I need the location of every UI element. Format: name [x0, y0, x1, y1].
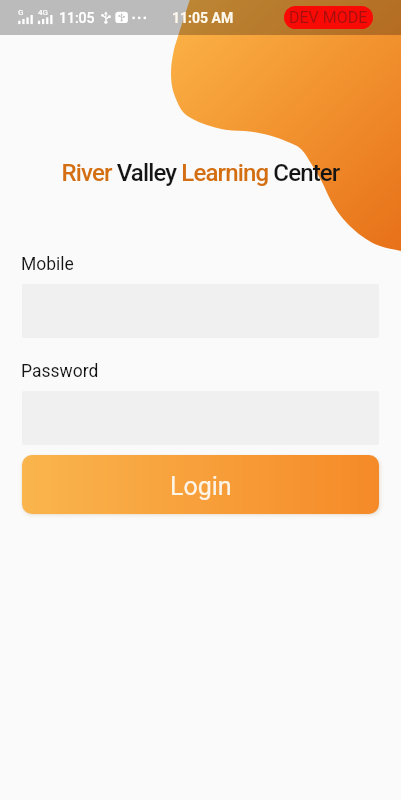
staticText: DEV MODE	[289, 8, 368, 27]
staticText: River Valley Learning Center	[0, 159, 401, 187]
staticText: Mobile	[21, 254, 74, 275]
staticText: Password	[21, 361, 99, 382]
button[interactable]: Login	[22, 455, 379, 514]
button[interactable]: DEV MODE	[284, 6, 373, 29]
staticText: 4G	[38, 8, 48, 17]
staticText: 11:05 AM	[172, 10, 234, 26]
staticText: 11:05	[59, 10, 95, 26]
staticText: G	[18, 8, 24, 17]
staticText: Login	[170, 472, 232, 501]
